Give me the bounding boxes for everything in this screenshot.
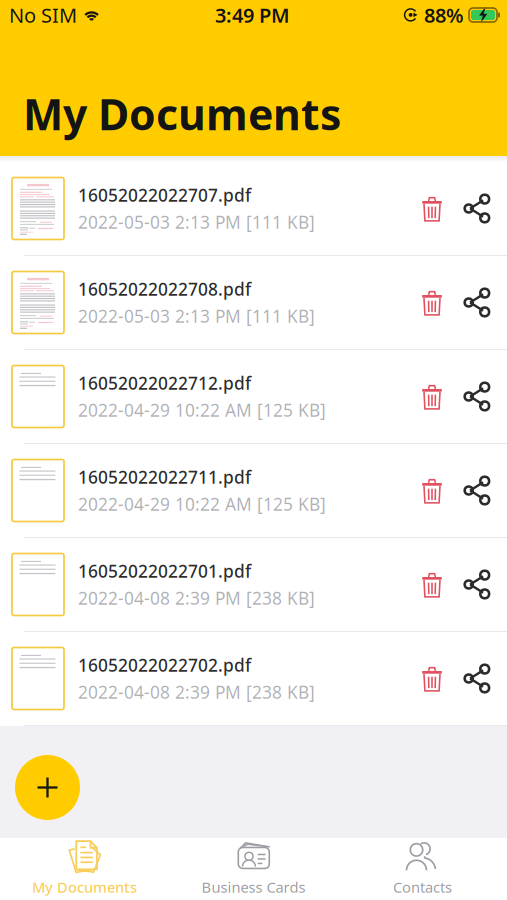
staticText: 2022-04-08 2:39 PM [238 KB] [78,586,315,609]
staticText: No SIM [9,2,77,28]
button[interactable]: Delete 16052022022707.pdf [409,181,455,235]
staticText: 16052022022707.pdf [78,183,251,206]
staticText: 16052022022701.pdf [78,559,251,582]
staticText: 2022-04-29 10:22 AM [125 KB] [78,398,326,421]
staticText: My Documents [32,877,137,897]
staticText: 88% [424,2,464,28]
staticText: My Documents [23,85,341,142]
button[interactable]: My Documents [0,833,169,900]
staticText: 2022-05-03 2:13 PM [111 KB] [78,304,315,327]
staticText: 3:49 PM [215,2,290,28]
button[interactable]: Share 16052022022707.pdf [455,181,499,235]
button[interactable]: Delete 16052022022708.pdf [409,275,455,329]
button[interactable]: Share 16052022022712.pdf [455,369,499,423]
staticText: Business Cards [201,877,305,897]
staticText: 2022-04-29 10:22 AM [125 KB] [78,492,326,515]
button[interactable]: Delete 16052022022711.pdf [409,463,455,517]
button[interactable]: Share 16052022022711.pdf [455,463,499,517]
button[interactable]: Delete 16052022022701.pdf [409,557,455,611]
staticText: 2022-04-08 2:39 PM [238 KB] [78,680,315,703]
staticText: 16052022022711.pdf [78,465,251,488]
staticText: 2022-05-03 2:13 PM [111 KB] [78,210,315,233]
button[interactable]: Delete 16052022022702.pdf [409,651,455,705]
button[interactable]: Delete 16052022022712.pdf [409,369,455,423]
button[interactable]: Add document [15,755,80,820]
staticText: Contacts [393,877,452,897]
staticText: 16052022022708.pdf [78,277,251,300]
button[interactable]: Share 16052022022702.pdf [455,651,499,705]
staticText: 16052022022712.pdf [78,371,251,394]
button[interactable]: Contacts [338,833,507,900]
button[interactable]: Business Cards [169,833,338,900]
staticText: 16052022022702.pdf [78,653,251,676]
button[interactable]: Share 16052022022701.pdf [455,557,499,611]
button[interactable]: Share 16052022022708.pdf [455,275,499,329]
